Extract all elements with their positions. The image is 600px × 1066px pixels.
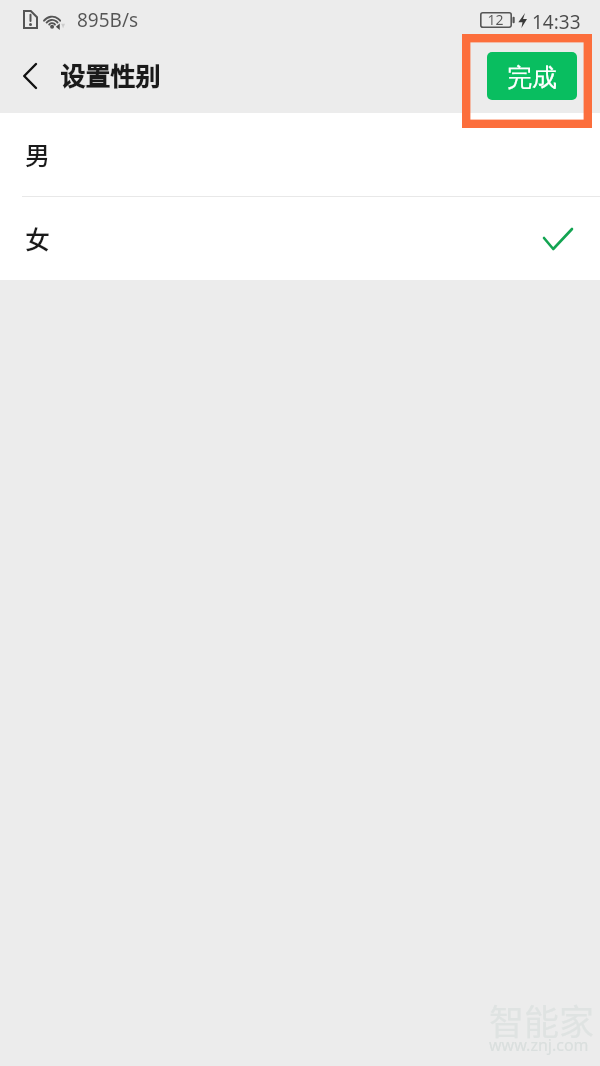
button[interactable]: Back	[6, 53, 52, 99]
staticText: 895B/s	[77, 7, 139, 33]
staticText: 完成	[507, 62, 557, 93]
staticText: 男	[25, 136, 51, 172]
staticText: 智能家	[489, 994, 595, 1045]
staticText: 女	[25, 220, 51, 256]
button[interactable]: 女	[0, 197, 600, 280]
staticText: 14:33	[532, 9, 581, 35]
staticText: 12	[483, 10, 508, 29]
other: Selected	[544, 229, 572, 249]
button[interactable]: 男	[0, 113, 600, 196]
staticText: 设置性别	[60, 57, 161, 93]
button[interactable]: 完成	[487, 52, 577, 100]
staticText: www.znj.com	[489, 1034, 589, 1056]
